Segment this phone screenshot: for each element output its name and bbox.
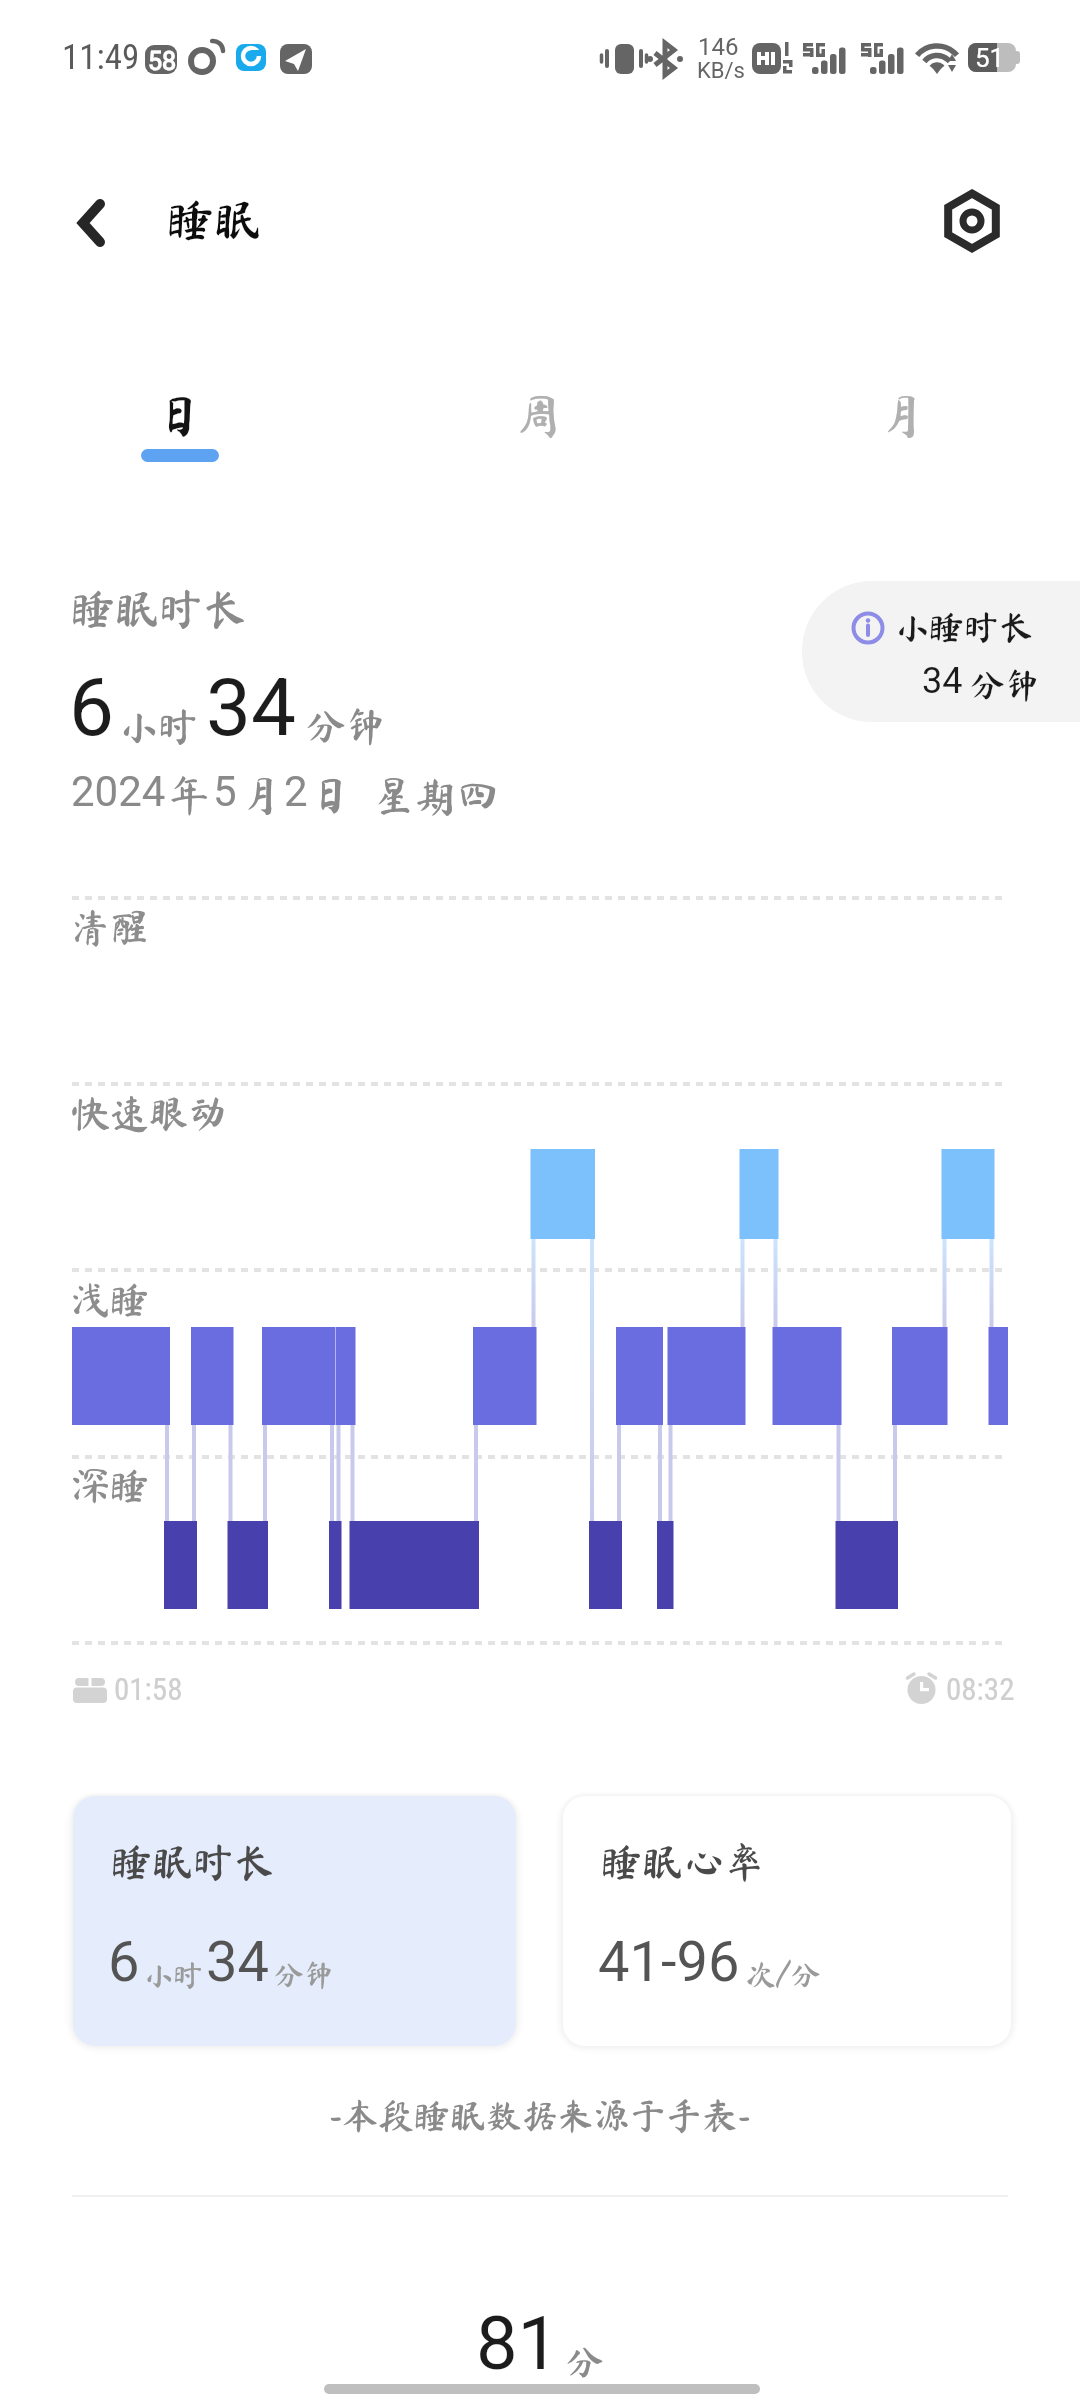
button[interactable]: 周 (428, 392, 648, 492)
button[interactable]: 月 (791, 392, 1011, 492)
staticText: 浅睡 (71, 1280, 150, 1319)
staticText: 分钟 (306, 706, 386, 746)
staticText: 34 (922, 660, 963, 702)
staticText: 2024 (71, 767, 166, 816)
staticText: 小时 (143, 1960, 203, 1990)
staticText: 08:32 (946, 1671, 1015, 1707)
staticText: 34 (206, 661, 296, 755)
staticText: KB/s (697, 58, 745, 84)
staticText: 月 (239, 774, 282, 816)
button[interactable]: Settings (936, 184, 1010, 258)
staticText: 清醒 (71, 908, 150, 947)
staticText: 星期四 (373, 774, 500, 816)
staticText: 月 (877, 392, 926, 440)
staticText: 深睡 (71, 1466, 150, 1505)
staticText: 01:58 (114, 1671, 183, 1707)
staticText: 日 (310, 774, 353, 816)
staticText: 41-96 (598, 1929, 740, 1995)
staticText: 6 (69, 661, 114, 755)
button[interactable]: 小睡时长 (802, 581, 1080, 722)
staticText: 5 (213, 767, 237, 816)
staticText: 2 (284, 767, 308, 816)
staticText: 81 (476, 2300, 560, 2387)
staticText: 分钟 (970, 667, 1041, 702)
staticText: 小时 (118, 706, 198, 746)
button[interactable]: Back (44, 178, 134, 268)
button[interactable]: 睡眠心率 (563, 1796, 1011, 2046)
staticText: 34 (206, 1929, 269, 1995)
staticText: 睡眠时长 (71, 586, 247, 630)
staticText: 次/分 (746, 1960, 821, 1990)
staticText: 睡眠心率 (601, 1841, 765, 1882)
button[interactable]: 睡眠时长 (73, 1796, 516, 2046)
staticText: 11:49 (62, 37, 140, 78)
staticText: 51 (975, 43, 1005, 73)
staticText: 小睡时长 (894, 609, 1035, 644)
staticText: 睡眠时长 (111, 1841, 275, 1882)
button[interactable]: 日 (70, 392, 290, 492)
staticText: 年 (168, 774, 211, 816)
staticText: 睡眠 (167, 196, 261, 243)
staticText: 日 (156, 392, 205, 440)
staticText: 58 (148, 47, 177, 76)
staticText: -本段睡眠数据来源于手表- (329, 2097, 751, 2133)
staticText: 周 (514, 392, 563, 440)
staticText: 分钟 (274, 1960, 334, 1990)
staticText: 快速眼动 (71, 1094, 228, 1133)
staticText: 146 (698, 33, 739, 61)
staticText: 6 (108, 1929, 140, 1995)
staticText: 分 (566, 2343, 605, 2381)
